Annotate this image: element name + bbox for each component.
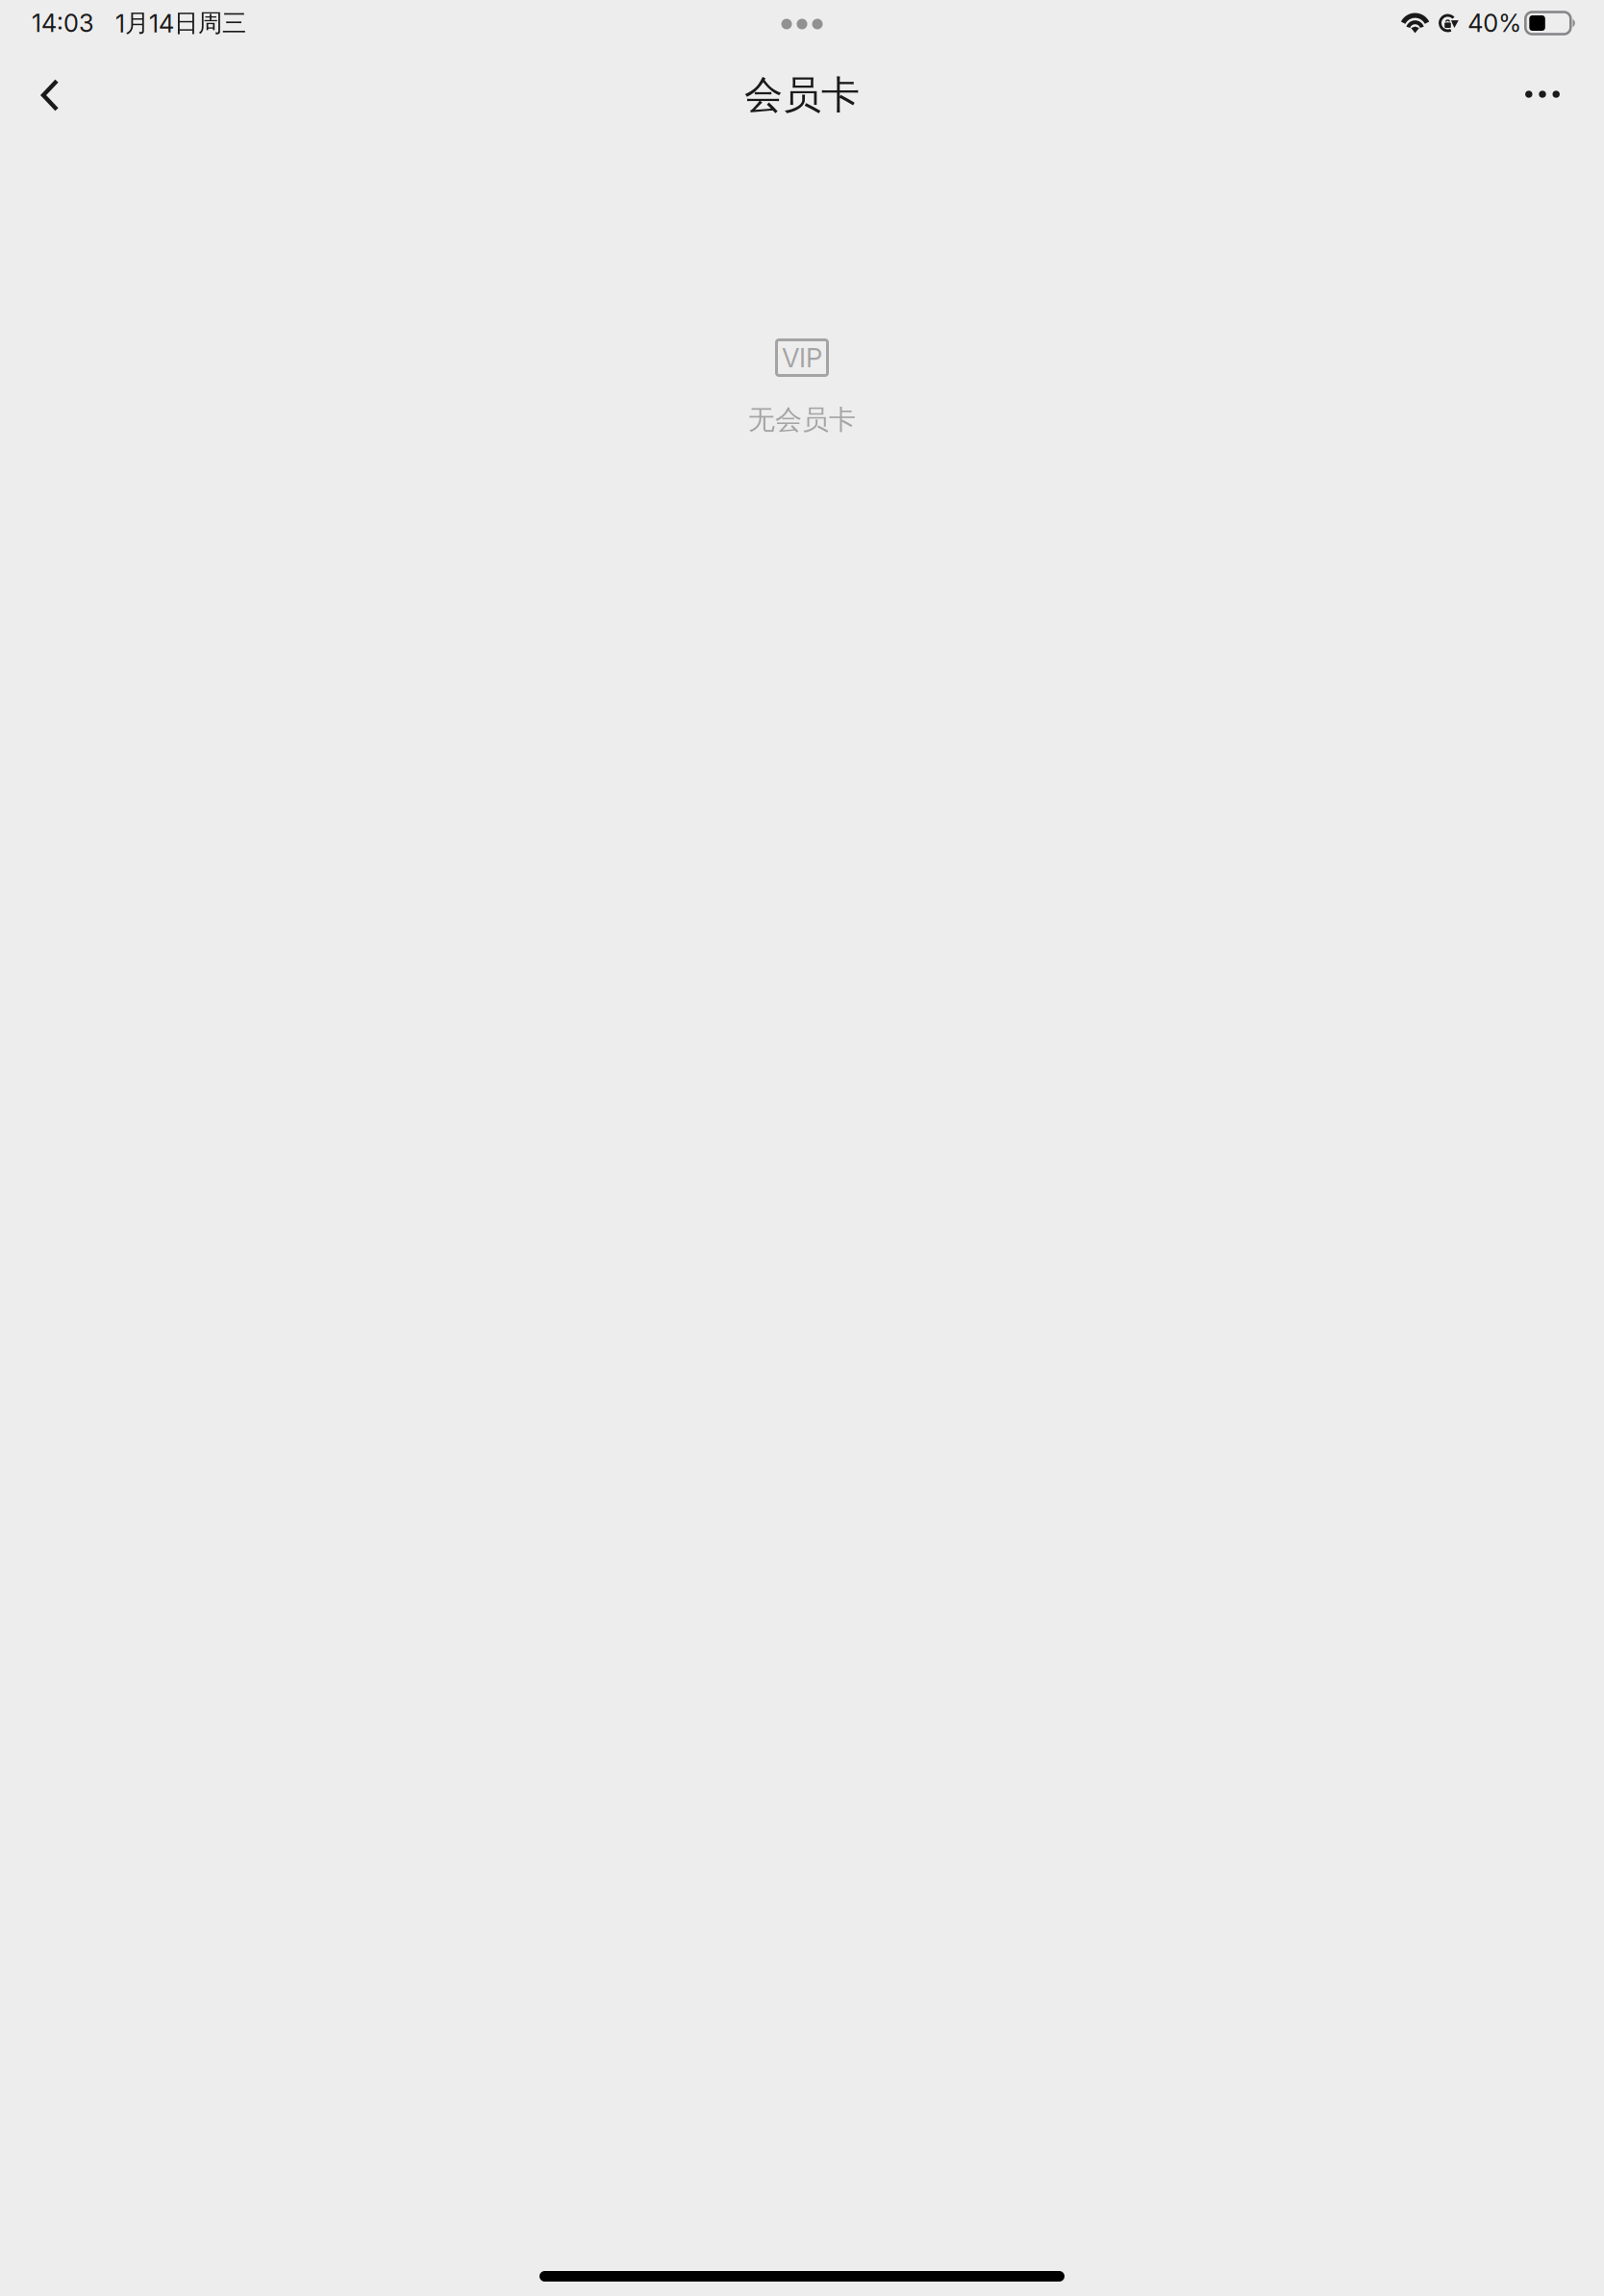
staticText: 14:03 bbox=[32, 8, 94, 38]
staticText: 无会员卡 bbox=[748, 403, 856, 437]
staticText: 40% bbox=[1468, 8, 1521, 38]
staticText: 会员卡 bbox=[744, 71, 860, 119]
button[interactable]: 返回 bbox=[9, 46, 91, 144]
staticText: 1月14日周三 bbox=[115, 8, 246, 38]
button[interactable]: 更多 bbox=[1501, 46, 1584, 144]
staticText: VIP bbox=[782, 342, 822, 374]
